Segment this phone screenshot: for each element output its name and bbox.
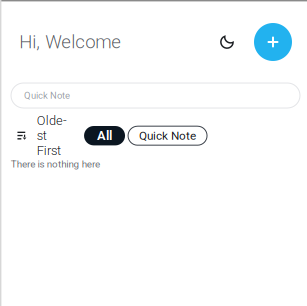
button[interactable]: Toggle dark mode xyxy=(211,25,243,59)
button[interactable]: Oldest First xyxy=(14,126,70,145)
staticText: Oldest First xyxy=(37,113,67,158)
staticText: Hi, Welcome xyxy=(19,31,121,53)
button[interactable]: New note xyxy=(254,23,292,61)
button[interactable]: Quick Note xyxy=(11,83,300,108)
staticText: Quick Note xyxy=(24,90,70,101)
staticText: There is nothing here xyxy=(11,158,100,170)
staticText: All xyxy=(97,128,112,143)
staticText: Quick Note xyxy=(139,129,196,143)
button[interactable]: All xyxy=(84,126,125,145)
button[interactable]: Quick Note xyxy=(128,126,207,145)
